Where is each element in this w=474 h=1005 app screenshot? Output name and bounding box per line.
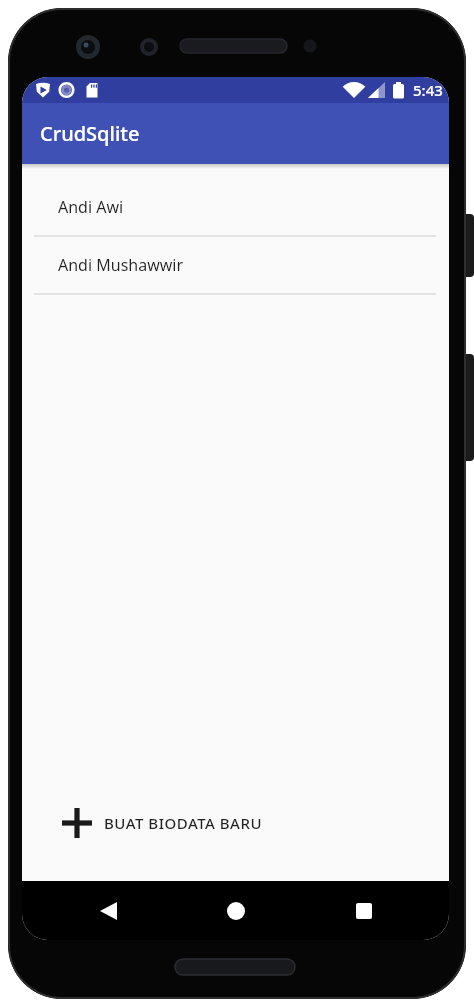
button[interactable] — [204, 881, 268, 940]
staticText: BUAT BIODATA BARU — [104, 813, 262, 833]
button[interactable] — [76, 881, 140, 940]
button[interactable]: Andi Awi — [22, 179, 449, 235]
staticText: Andi Awi — [58, 196, 124, 218]
button[interactable]: Andi Mushawwir — [22, 237, 449, 293]
button[interactable]: BUAT BIODATA BARU — [62, 795, 262, 851]
staticText: Andi Mushawwir — [58, 254, 184, 276]
staticText: 5:43 — [413, 80, 443, 100]
button[interactable] — [332, 881, 396, 940]
staticText: CrudSqlite — [40, 120, 140, 147]
